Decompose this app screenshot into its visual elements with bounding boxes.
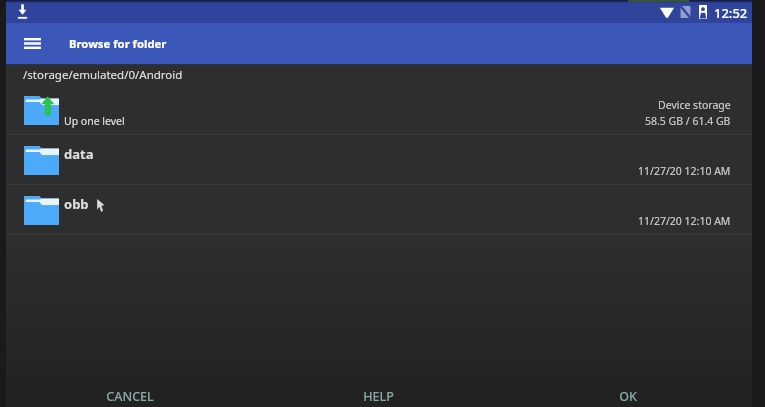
- staticText: data: [64, 145, 94, 163]
- staticText: 11/27/20 12:10 AM: [638, 214, 731, 228]
- staticText: OK: [619, 388, 637, 405]
- staticText: Device storage: [658, 98, 731, 112]
- button[interactable]: data: [6, 135, 752, 185]
- staticText: 12:52: [714, 4, 748, 22]
- staticText: /storage/emulated/0/Android: [23, 67, 183, 83]
- button[interactable]: HELP: [254, 378, 503, 407]
- staticText: CANCEL: [106, 388, 154, 405]
- staticText: Up one level: [64, 114, 125, 128]
- button[interactable]: obb: [6, 185, 752, 235]
- button[interactable]: OK: [503, 378, 752, 407]
- staticText: 58.5 GB / 61.4 GB: [645, 114, 731, 128]
- button[interactable]: Menu: [6, 23, 58, 64]
- button[interactable]: CANCEL: [6, 378, 254, 407]
- staticText: obb: [64, 195, 89, 213]
- staticText: HELP: [363, 388, 394, 405]
- button[interactable]: Up one level: [6, 85, 752, 135]
- staticText: 11/27/20 12:10 AM: [638, 164, 731, 178]
- staticText: Browse for folder: [69, 36, 167, 51]
